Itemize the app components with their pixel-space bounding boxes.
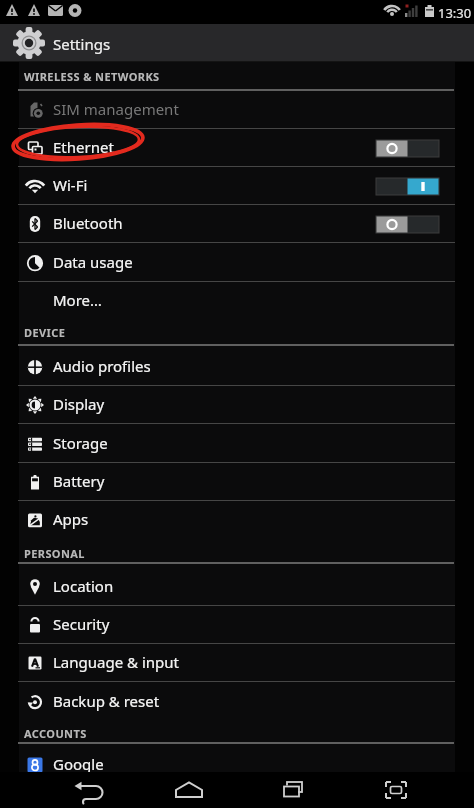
button[interactable] — [274, 772, 312, 808]
button[interactable]: Wi-Fi — [0, 167, 474, 205]
button[interactable]: Display — [0, 386, 474, 424]
staticText: PERSONAL — [24, 546, 85, 561]
button[interactable]: More… — [0, 282, 474, 320]
button[interactable]: Battery — [0, 463, 474, 501]
staticText: Storage — [53, 433, 108, 453]
button[interactable]: Ethernet — [0, 129, 474, 167]
staticText: Location — [53, 576, 114, 596]
button[interactable]: Google — [0, 746, 474, 784]
staticText: More… — [53, 290, 102, 310]
button[interactable]: Apps — [0, 501, 474, 539]
button[interactable]: Location — [0, 568, 474, 606]
button[interactable] — [170, 772, 208, 808]
staticText: Ethernet — [53, 137, 114, 157]
staticText: ACCOUNTS — [24, 726, 87, 741]
staticText: Security — [53, 614, 110, 634]
staticText: Language & input — [53, 652, 179, 672]
staticText: 13:30 — [438, 4, 472, 22]
staticText: Display — [53, 394, 105, 414]
staticText: Data usage — [53, 252, 133, 272]
staticText: Google — [53, 754, 104, 774]
staticText: Wi-Fi — [53, 175, 88, 195]
staticText: Backup & reset — [53, 691, 160, 711]
staticText: DEVICE — [24, 325, 66, 340]
staticText: Bluetooth — [53, 213, 123, 233]
button[interactable] — [70, 772, 106, 808]
button[interactable]: Language & input — [0, 644, 474, 682]
staticText: Settings — [53, 34, 111, 54]
staticText: Audio profiles — [53, 356, 151, 376]
staticText: Battery — [53, 471, 105, 491]
button[interactable]: Data usage — [0, 244, 474, 282]
staticText: SIM management — [53, 99, 179, 119]
button[interactable]: Audio profiles — [0, 348, 474, 386]
button[interactable] — [377, 772, 415, 808]
button[interactable]: Storage — [0, 425, 474, 463]
button[interactable]: Security — [0, 606, 474, 644]
staticText: WIRELESS & NETWORKS — [24, 69, 160, 84]
button[interactable]: Backup & reset — [0, 683, 474, 721]
button[interactable]: SIM management — [0, 91, 474, 129]
button[interactable]: Bluetooth — [0, 205, 474, 243]
staticText: Apps — [53, 509, 89, 529]
